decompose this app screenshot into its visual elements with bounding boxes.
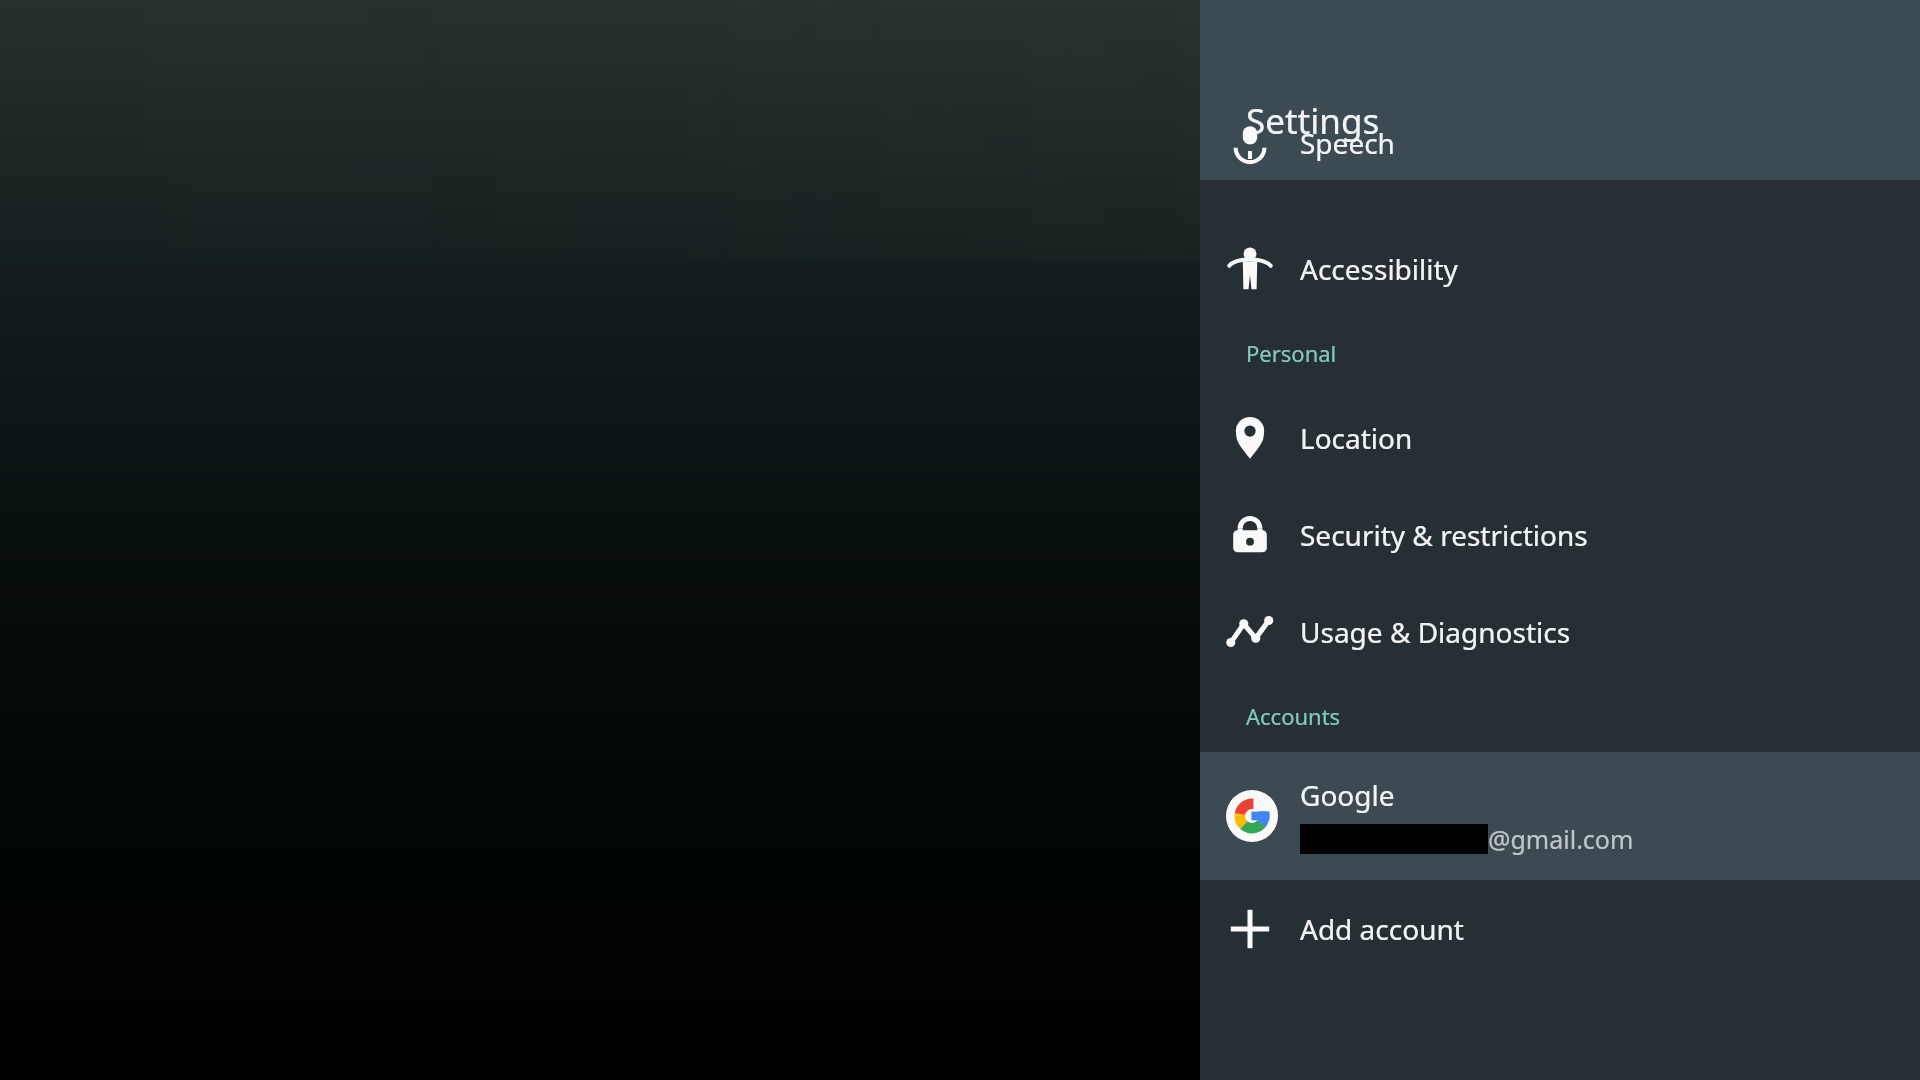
staticText: Speech bbox=[1300, 124, 1395, 162]
button[interactable]: Google bbox=[1200, 752, 1920, 880]
staticText: Add account bbox=[1300, 910, 1464, 948]
staticText: Personal bbox=[1246, 338, 1337, 368]
button[interactable]: Accessibility bbox=[1200, 220, 1920, 317]
other: Speech bbox=[1226, 123, 1274, 163]
other: Add account bbox=[1226, 905, 1274, 953]
other: Security and restrictions bbox=[1226, 511, 1274, 559]
staticText: Accounts bbox=[1246, 701, 1341, 731]
staticText: @gmail.com bbox=[1488, 822, 1634, 856]
staticText: Google bbox=[1300, 776, 1395, 814]
other: Usage and Diagnostics bbox=[1226, 608, 1274, 656]
staticText: Usage & Diagnostics bbox=[1300, 613, 1571, 651]
staticText: Security & restrictions bbox=[1300, 516, 1588, 554]
staticText: Location bbox=[1300, 419, 1413, 457]
button[interactable]: Location bbox=[1200, 389, 1920, 486]
button[interactable]: Add account bbox=[1200, 880, 1920, 977]
button[interactable]: Usage and Diagnostics bbox=[1200, 583, 1920, 680]
staticText: Accessibility bbox=[1300, 250, 1458, 288]
other: Location bbox=[1226, 414, 1274, 462]
button[interactable]: Security and restrictions bbox=[1200, 486, 1920, 583]
other: Accessibility bbox=[1226, 245, 1274, 293]
staticText: Settings bbox=[1246, 97, 1380, 145]
